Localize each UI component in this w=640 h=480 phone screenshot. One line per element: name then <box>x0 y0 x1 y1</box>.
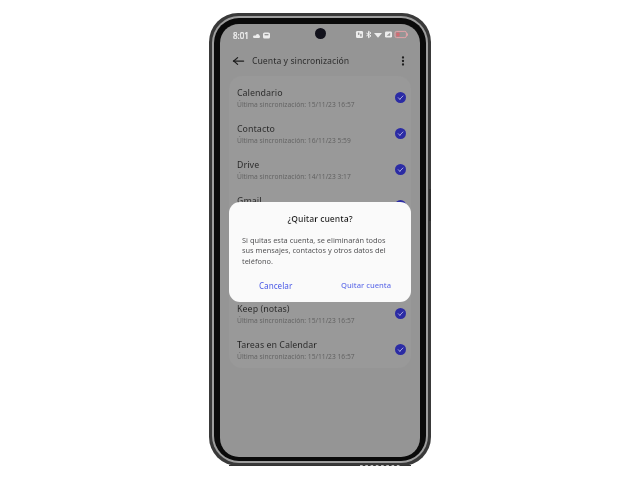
button[interactable]: Google Fit <box>229 224 411 260</box>
button[interactable]: Drive <box>229 152 411 188</box>
button[interactable]: Quitar cuenta <box>338 278 395 292</box>
button[interactable]: Contacto <box>229 116 411 152</box>
staticText: Última sincronización: 16/11/23 5:59 <box>237 136 351 145</box>
staticText: Cancelar <box>259 280 293 291</box>
staticText: Si quitas esta cuenta, se eliminarán tod… <box>242 235 390 267</box>
staticText: Tareas en Calendar <box>237 339 318 351</box>
staticText: Google Fit <box>237 231 280 243</box>
staticText: Última sincronización: 15/11/23 16:57 <box>237 208 355 217</box>
staticText: Quitar cuenta <box>341 280 392 290</box>
staticText: Última sincronización: 15/11/23 16:57 <box>237 316 355 325</box>
staticText: ¿Quitar cuenta? <box>229 213 411 225</box>
button[interactable]: Tareas en Calendar <box>229 332 411 368</box>
staticText: Última sincronización: 15/11/23 16:57 <box>237 352 355 361</box>
staticText: Contacto <box>237 123 275 135</box>
button[interactable]: Calendario <box>229 80 411 116</box>
staticText: Gmail <box>237 195 262 207</box>
staticText: Drive <box>237 159 260 171</box>
staticText: Última sincronización: 15/11/23 16:57 <box>237 100 355 109</box>
button[interactable]: Gmail <box>229 188 411 224</box>
staticText: Última sincronización: 15/11/23 16:57 <box>237 244 355 253</box>
staticText: Keep (notas) <box>237 303 290 315</box>
button[interactable]: Google Play <box>229 260 411 296</box>
staticText: 8:01 <box>233 30 249 41</box>
staticText: Última sincronización: 15/11/23 16:57 <box>237 280 355 289</box>
button[interactable]: Cancelar <box>256 278 296 293</box>
button[interactable]: Back <box>220 47 247 74</box>
button[interactable]: Keep (notas) <box>229 296 411 332</box>
staticText: Cuenta y sincronización <box>252 55 350 67</box>
staticText: Calendario <box>237 87 283 99</box>
button[interactable]: More options <box>398 47 420 74</box>
staticText: Última sincronización: 14/11/23 3:17 <box>237 172 351 181</box>
